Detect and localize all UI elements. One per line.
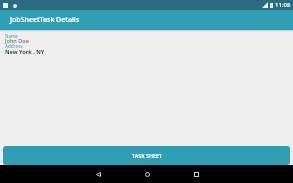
staticText: Address [5,43,23,49]
staticText: New York , NY [5,48,45,56]
button[interactable] [95,171,101,177]
staticText: John Doe [5,37,29,45]
button[interactable]: TASK SHEET [3,146,290,165]
staticText: Name [5,33,18,39]
button[interactable] [144,171,150,177]
button[interactable] [193,171,199,177]
staticText: JobSheetTask Details [10,15,80,25]
staticText: TASK SHEET [132,152,162,159]
staticText: 11:08 [275,1,291,9]
